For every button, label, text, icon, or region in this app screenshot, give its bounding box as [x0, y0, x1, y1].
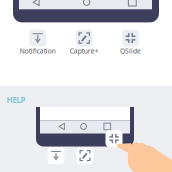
button[interactable]: Capture+ — [70, 30, 99, 55]
staticText: Capture+ — [70, 47, 99, 55]
staticText: QSlide — [120, 47, 141, 55]
button[interactable]: QSlide — [120, 30, 141, 55]
button[interactable]: Notification — [20, 30, 56, 55]
button[interactable] — [47, 147, 64, 172]
staticText: HELP — [6, 95, 25, 105]
staticText: Notification — [20, 47, 56, 55]
button[interactable] — [76, 147, 93, 172]
button[interactable] — [105, 130, 122, 156]
